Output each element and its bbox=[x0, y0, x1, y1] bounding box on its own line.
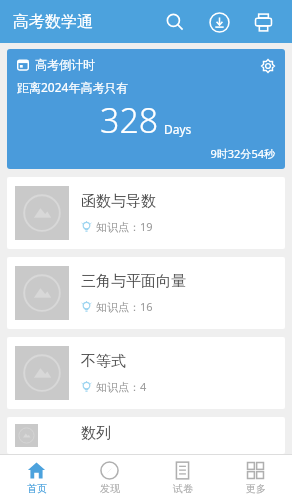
button[interactable]: 首页 bbox=[0, 455, 73, 500]
button[interactable]: Print bbox=[246, 5, 280, 39]
staticText: 三角与平面向量 bbox=[81, 272, 186, 291]
staticText: 更多 bbox=[246, 482, 266, 495]
staticText: Days bbox=[164, 121, 192, 137]
button[interactable]: Search bbox=[158, 5, 192, 39]
staticText: 试卷 bbox=[173, 482, 193, 495]
staticText: 首页 bbox=[27, 482, 47, 495]
staticText: 不等式 bbox=[81, 352, 126, 371]
staticText: 知识点：19 bbox=[96, 219, 153, 234]
button[interactable]: Download bbox=[202, 5, 236, 39]
staticText: 高考数学通 bbox=[13, 12, 93, 32]
staticText: 函数与导数 bbox=[81, 192, 156, 211]
button[interactable]: Settings bbox=[255, 53, 281, 79]
button[interactable]: 试卷 bbox=[146, 455, 219, 500]
staticText: 发现 bbox=[100, 482, 120, 495]
button[interactable]: 更多 bbox=[219, 455, 292, 500]
button[interactable]: 高考倒计时 bbox=[7, 49, 285, 169]
staticText: 知识点：16 bbox=[96, 299, 153, 314]
button[interactable]: 函数与导数 bbox=[7, 177, 285, 249]
staticText: 9时32分54秒 bbox=[17, 146, 275, 161]
staticText: 328 bbox=[100, 97, 159, 143]
staticText: 高考倒计时 bbox=[35, 57, 95, 72]
staticText: 数列 bbox=[81, 424, 111, 443]
button[interactable]: 数列 bbox=[7, 417, 285, 454]
button[interactable]: 三角与平面向量 bbox=[7, 257, 285, 329]
button[interactable]: 不等式 bbox=[7, 337, 285, 409]
staticText: 知识点：4 bbox=[96, 379, 147, 394]
button[interactable]: 发现 bbox=[73, 455, 146, 500]
staticText: 距离2024年高考只有 bbox=[17, 79, 129, 95]
